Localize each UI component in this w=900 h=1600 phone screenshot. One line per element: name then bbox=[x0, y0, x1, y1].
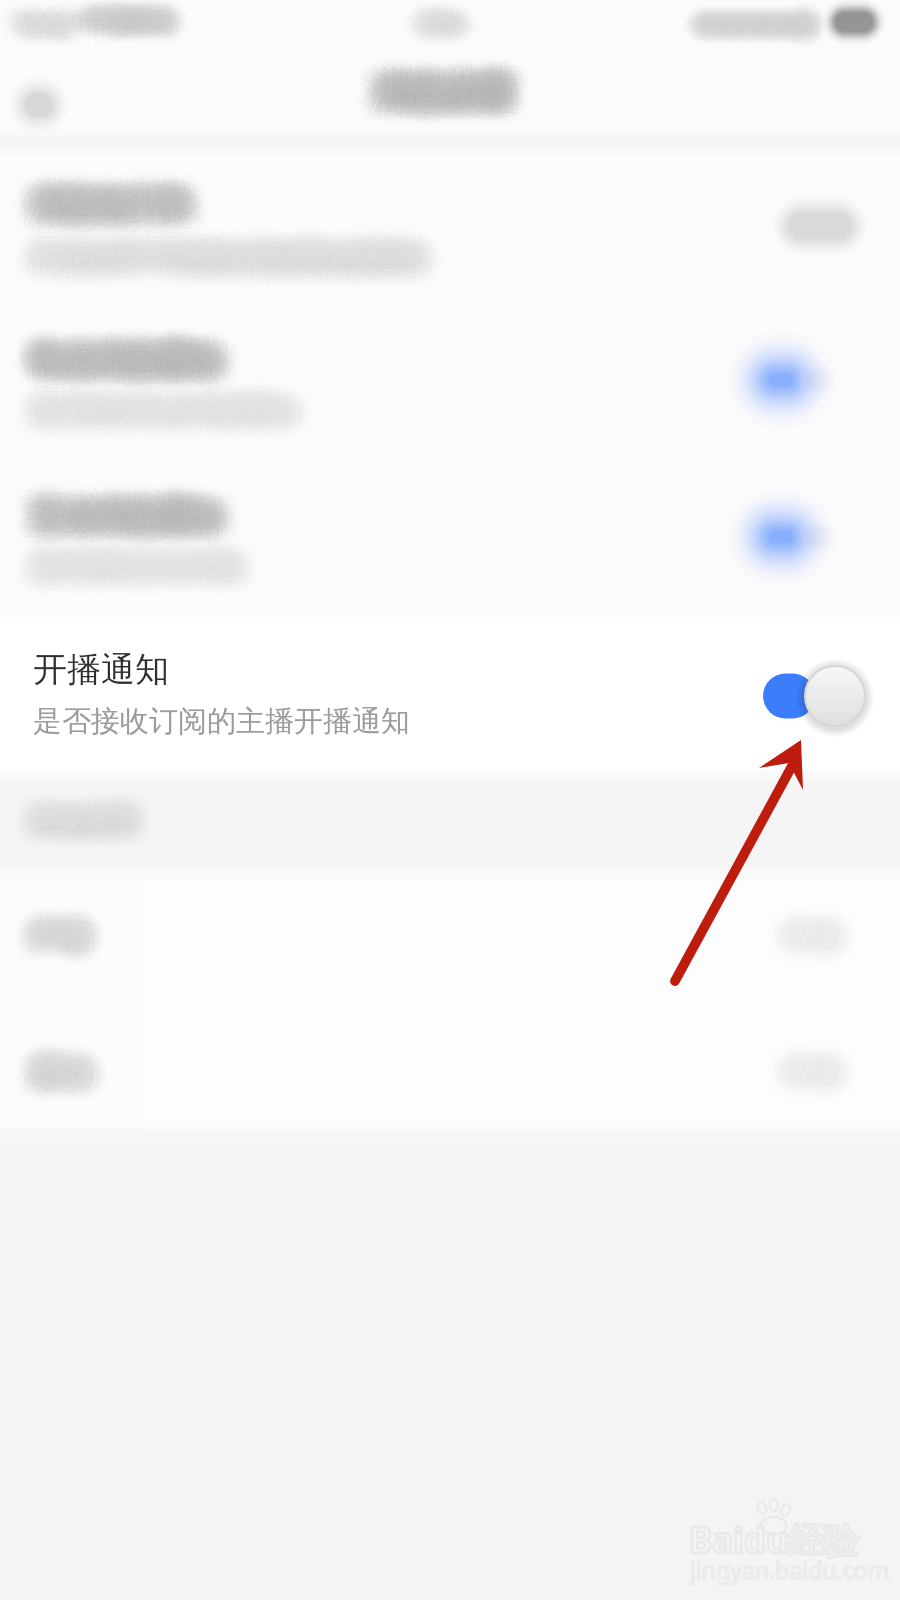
staticText: 私信消息通知 bbox=[50, 325, 236, 364]
staticText: 互动消息通知 bbox=[56, 491, 242, 530]
staticText: 是否接收互动消息 bbox=[17, 544, 225, 577]
button[interactable]: 开播通知 bbox=[0, 617, 900, 778]
staticText: 开启后将不再接收消息通知提醒啦 bbox=[58, 235, 448, 268]
staticText: 中国移动 bbox=[98, 10, 186, 38]
staticText: 震动 bbox=[25, 1062, 83, 1099]
staticText: 是否接收私信消息通知 bbox=[18, 410, 278, 443]
staticText: 私信消息通知 bbox=[47, 357, 233, 396]
staticText: 声音 bbox=[15, 921, 73, 958]
staticText: 10:42 bbox=[26, 6, 83, 36]
staticText: ▪ ▪ ▪ ▪ ▪ ▮ bbox=[714, 0, 825, 26]
staticText: 震动 bbox=[19, 1056, 77, 1093]
staticText: 36% bbox=[427, 0, 469, 22]
staticText: 开启后将不再接收消息通知提醒啦 bbox=[52, 226, 442, 259]
staticText: 其他设置 bbox=[10, 806, 114, 839]
staticText: 声音 bbox=[43, 920, 101, 957]
staticText: 声音 bbox=[41, 934, 99, 971]
staticText: 开启 bbox=[810, 1057, 862, 1090]
staticText: 私信消息通知 bbox=[43, 337, 229, 376]
staticText: 36% bbox=[407, 7, 449, 36]
staticText: 开启 bbox=[795, 934, 847, 967]
staticText: 消息设置 bbox=[353, 61, 489, 104]
staticText: 消息免打扰 bbox=[28, 170, 183, 209]
staticText: 是否接收互动消息 bbox=[50, 552, 258, 585]
staticText: 开启 bbox=[800, 1050, 852, 1083]
staticText: 中国移动 bbox=[89, 18, 177, 46]
staticText: 其他设置 bbox=[33, 814, 137, 847]
staticText: 开启后将不再接收消息通知提醒啦 bbox=[47, 247, 437, 280]
staticText: 互动消息通知 bbox=[38, 516, 224, 555]
staticText: 消息设置 bbox=[353, 72, 489, 115]
staticText: 私信消息通知 bbox=[31, 342, 217, 381]
staticText: 消息设置 bbox=[368, 61, 504, 104]
staticText: ▪ ▪ ▪ ▪ ▪ ▮ bbox=[693, 0, 804, 27]
staticText: 震动 bbox=[30, 1038, 88, 1075]
staticText: 开播通知 bbox=[33, 648, 169, 691]
staticText: 声音 bbox=[22, 923, 80, 960]
staticText: 开启后将不再接收消息通知提醒啦 bbox=[23, 240, 413, 273]
staticText: 开启 bbox=[802, 1056, 854, 1089]
staticText: 消息免打扰 bbox=[9, 173, 164, 212]
staticText: 开启 bbox=[795, 1044, 847, 1077]
staticText: 中国移动 bbox=[88, 21, 176, 49]
staticText: 震动 bbox=[49, 1042, 107, 1079]
staticText: 消息免打扰 bbox=[43, 203, 198, 242]
staticText: 是否接收互动消息 bbox=[16, 560, 224, 593]
staticText: 开启 bbox=[783, 1059, 835, 1092]
staticText: 消息免打扰 bbox=[25, 195, 180, 234]
staticText: 私信消息通知 bbox=[22, 319, 208, 358]
staticText: 消息设置 bbox=[377, 61, 513, 104]
button[interactable]: 开播通知 开关 bbox=[758, 663, 870, 729]
staticText: 消息设置 bbox=[369, 63, 505, 106]
staticText: 开启 bbox=[792, 1061, 844, 1094]
staticText: 消息设置 bbox=[401, 67, 537, 110]
staticText: 是否接收私信消息通知 bbox=[46, 392, 306, 425]
staticText: 10:42 bbox=[19, 5, 76, 35]
staticText: 是否接收私信消息通知 bbox=[38, 383, 298, 416]
staticText: 是否接收私信消息通知 bbox=[20, 412, 280, 445]
staticText: 中国移动 bbox=[66, 3, 154, 31]
staticText: 互动消息通知 bbox=[21, 481, 207, 520]
staticText: 10:42 bbox=[9, 8, 66, 38]
staticText: 其他设置 bbox=[22, 814, 126, 847]
staticText: 是否接收私信消息通知 bbox=[42, 373, 302, 406]
staticText: 声音 bbox=[47, 922, 105, 959]
staticText: 是否接收私信消息通知 bbox=[56, 398, 316, 431]
staticText: 开启后将不再接收消息通知提醒啦 bbox=[25, 254, 415, 287]
staticText: 互动消息通知 bbox=[36, 515, 222, 554]
staticText: 震动 bbox=[13, 1043, 71, 1080]
staticText: 消息免打扰 bbox=[21, 167, 176, 206]
staticText: 中国移动 bbox=[101, 10, 189, 38]
staticText: 中国移动 bbox=[85, 7, 173, 35]
staticText: 是否接收互动消息 bbox=[35, 536, 243, 569]
staticText: ▪ ▪ ▪ ▪ ▪ ▮ bbox=[700, 0, 811, 21]
staticText: ▪ ▪ ▪ ▪ ▪ ▮ bbox=[696, 23, 807, 52]
staticText: 是否接收互动消息 bbox=[46, 531, 254, 564]
staticText: 震动 bbox=[44, 1063, 102, 1100]
staticText: 中国移动 bbox=[78, 6, 166, 34]
staticText: ▪ ▪ ▪ ▪ ▪ ▮ bbox=[695, 0, 806, 20]
staticText: 其他设置 bbox=[35, 799, 139, 832]
staticText: 消息设置 bbox=[394, 74, 530, 117]
staticText: 中国移动 bbox=[67, 7, 155, 35]
staticText: 是否接收私信消息通知 bbox=[22, 378, 282, 411]
staticText: 消息设置 bbox=[378, 54, 514, 97]
staticText: 互动消息通知 bbox=[16, 483, 202, 522]
staticText: 中国移动 bbox=[90, 0, 178, 27]
staticText: 消息免打扰 bbox=[24, 196, 179, 235]
staticText: 是否接收互动消息 bbox=[18, 557, 226, 590]
staticText: 36% bbox=[407, 10, 449, 39]
staticText: 中国移动 bbox=[78, 10, 166, 38]
staticText: 10:42 bbox=[0, 3, 55, 33]
staticText: 震动 bbox=[52, 1049, 110, 1086]
staticText: 震动 bbox=[45, 1062, 103, 1099]
staticText: 是否接收互动消息 bbox=[57, 561, 265, 594]
staticText: 震动 bbox=[28, 1033, 86, 1070]
staticText: 是否接收互动消息 bbox=[20, 556, 228, 589]
staticText: 其他设置 bbox=[23, 808, 127, 841]
staticText: 互动消息通知 bbox=[36, 485, 222, 524]
staticText: 震动 bbox=[33, 1067, 91, 1104]
staticText: 其他设置 bbox=[38, 793, 142, 826]
staticText: 中国移动 bbox=[76, 0, 164, 26]
staticText: 开启 bbox=[799, 913, 851, 946]
